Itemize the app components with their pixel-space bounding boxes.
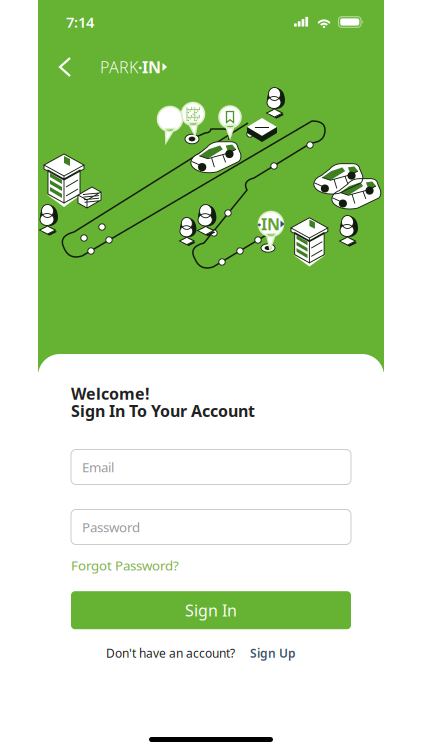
staticText: Forgot Password? — [71, 556, 179, 574]
staticText: Welcome! — [71, 383, 150, 404]
staticText: Sign Up — [250, 645, 296, 661]
button[interactable]: Sign Up — [250, 645, 296, 661]
button[interactable]: Forgot Password? — [71, 556, 179, 574]
staticText: 7:14 — [66, 12, 94, 32]
staticText: IN — [261, 213, 280, 235]
staticText: Password — [82, 518, 140, 536]
button[interactable]: Sign In — [71, 591, 351, 629]
staticText: Sign In To Your Account — [71, 400, 255, 421]
staticText: ·IN — [138, 56, 161, 78]
staticText: PARK — [100, 56, 138, 78]
button[interactable]: Back — [50, 51, 80, 83]
staticText: Sign In — [185, 600, 237, 621]
staticText: Don't have an account? — [106, 645, 235, 661]
staticText: · — [257, 213, 261, 235]
staticText: Email — [82, 458, 114, 476]
